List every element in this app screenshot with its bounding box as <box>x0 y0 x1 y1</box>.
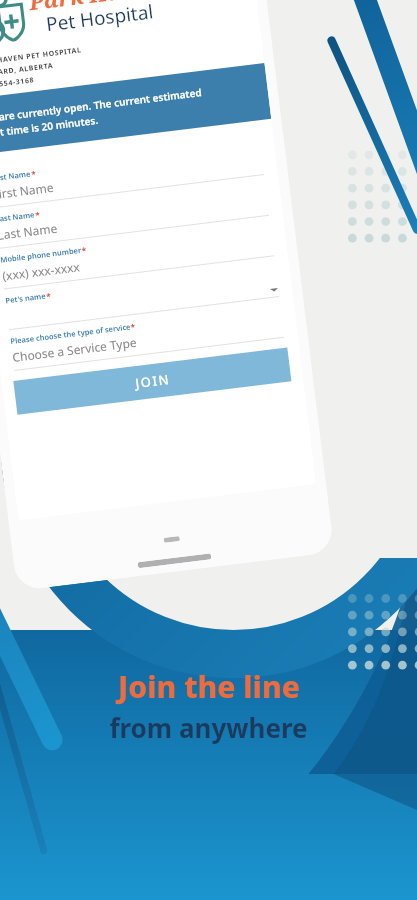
staticText: Pet's name <box>5 290 47 305</box>
staticText: First Name <box>0 179 55 202</box>
staticText: First Name <box>0 168 32 183</box>
staticText: * <box>130 321 136 332</box>
staticText: (xxx) xxx-xxxx <box>1 258 81 284</box>
staticText: Choose a Service Type <box>11 334 137 365</box>
staticText: Mobile phone number <box>0 245 82 265</box>
staticText: Park Haven <box>27 0 163 16</box>
button[interactable]: First Name <box>0 133 278 210</box>
button[interactable]: We are currently open. The current estim… <box>0 63 271 155</box>
staticText: ORCHARD, ALBERTA <box>0 61 54 80</box>
staticText: JOIN <box>134 370 171 392</box>
staticText: Pet Hospital <box>44 0 155 37</box>
staticText: Last Name <box>0 209 36 224</box>
staticText: PARK HAVEN PET HOSPITAL <box>0 45 82 68</box>
button[interactable]: Select pet's name <box>0 255 293 332</box>
staticText: Please choose the type of service <box>10 321 131 346</box>
button[interactable]: Last Name <box>0 173 283 251</box>
staticText: Last Name <box>0 219 59 243</box>
staticText: * <box>45 290 52 301</box>
staticText: * <box>81 244 87 256</box>
button[interactable]: JOIN <box>13 347 291 415</box>
staticText: from anywhere <box>109 710 308 745</box>
button[interactable]: Mobile phone number <box>0 214 288 291</box>
staticText: * <box>35 209 41 220</box>
staticText: We are currently open. The current estim… <box>0 85 204 141</box>
staticText: * <box>30 168 37 179</box>
button[interactable]: Please choose the type of service <box>0 295 298 373</box>
staticText: Join the line <box>118 666 300 707</box>
staticText: (403) 554-3168 <box>0 75 35 92</box>
